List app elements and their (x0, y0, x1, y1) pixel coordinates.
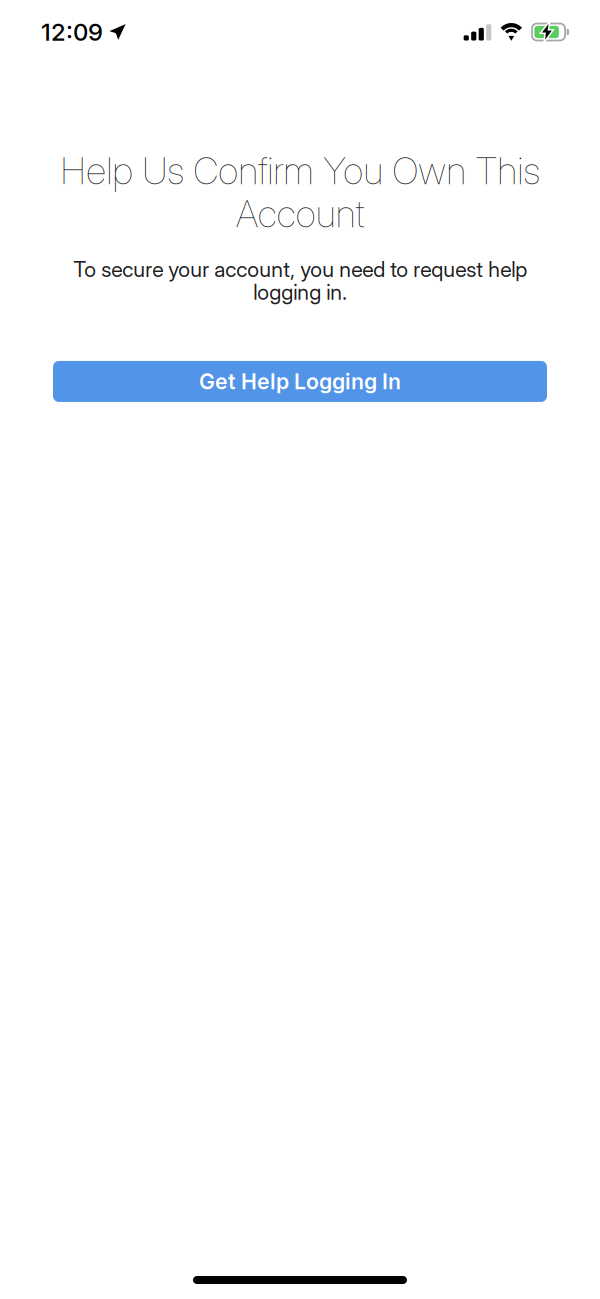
staticText: 12:09 (41, 17, 103, 46)
button[interactable]: Get Help Logging In (53, 361, 547, 402)
staticText: Get Help Logging In (199, 369, 401, 394)
staticText: To secure your account, you need to requ… (73, 256, 527, 305)
staticText: Help Us Confirm You Own This Account (60, 148, 540, 236)
